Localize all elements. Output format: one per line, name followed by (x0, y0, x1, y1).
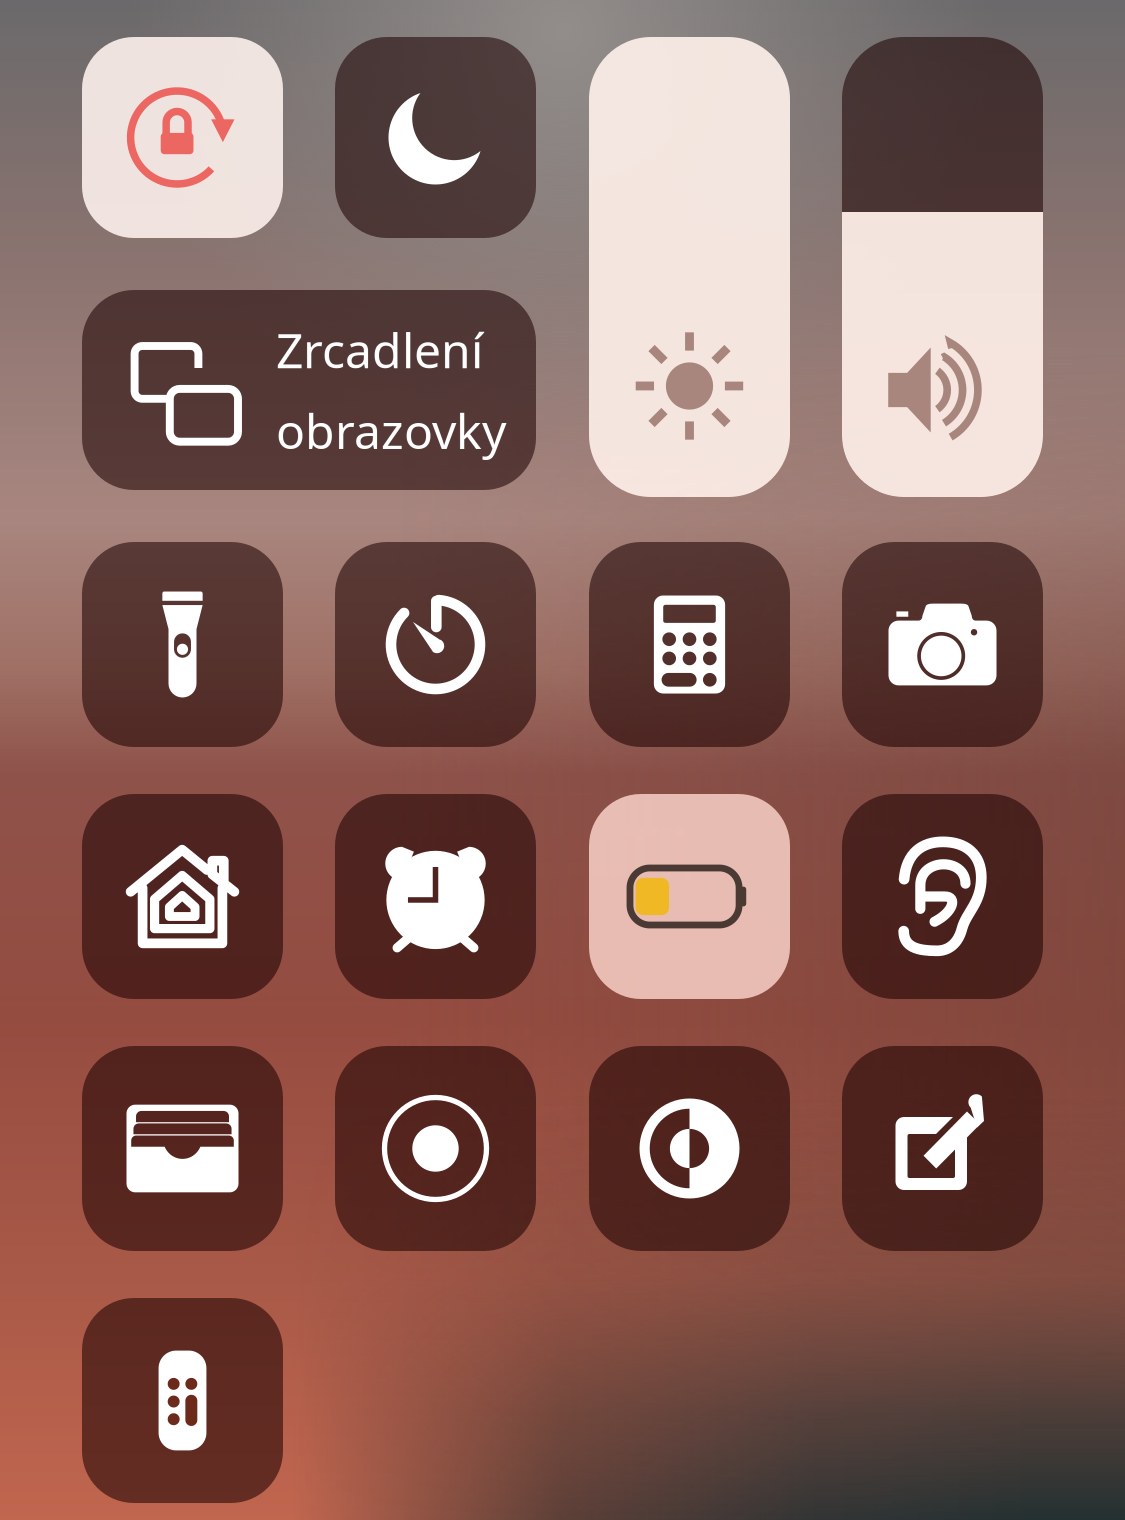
button[interactable]: Apple TV Remote (82, 1298, 283, 1503)
button[interactable]: Flashlight (82, 542, 283, 747)
button[interactable]: Wallet (82, 1046, 283, 1251)
button[interactable]: Volume (842, 37, 1043, 497)
button[interactable]: Home (82, 794, 283, 999)
button[interactable]: Do Not Disturb (335, 37, 536, 238)
button[interactable]: Dark Mode (589, 1046, 790, 1251)
button[interactable]: Low Power Mode (589, 794, 790, 999)
staticText: Zrcadlení (276, 318, 483, 381)
button[interactable]: Screen Mirroring (82, 290, 536, 490)
button[interactable]: Hearing (842, 794, 1043, 999)
button[interactable]: Rotation Lock (82, 37, 283, 238)
button[interactable]: Screen Record (335, 1046, 536, 1251)
button[interactable]: Alarm (335, 794, 536, 999)
button[interactable]: Timer (335, 542, 536, 747)
button[interactable]: Camera (842, 542, 1043, 747)
button[interactable]: Calculator (589, 542, 790, 747)
button[interactable]: Quick Note (842, 1046, 1043, 1251)
staticText: obrazovky (276, 398, 506, 462)
button[interactable]: Brightness (589, 37, 790, 497)
